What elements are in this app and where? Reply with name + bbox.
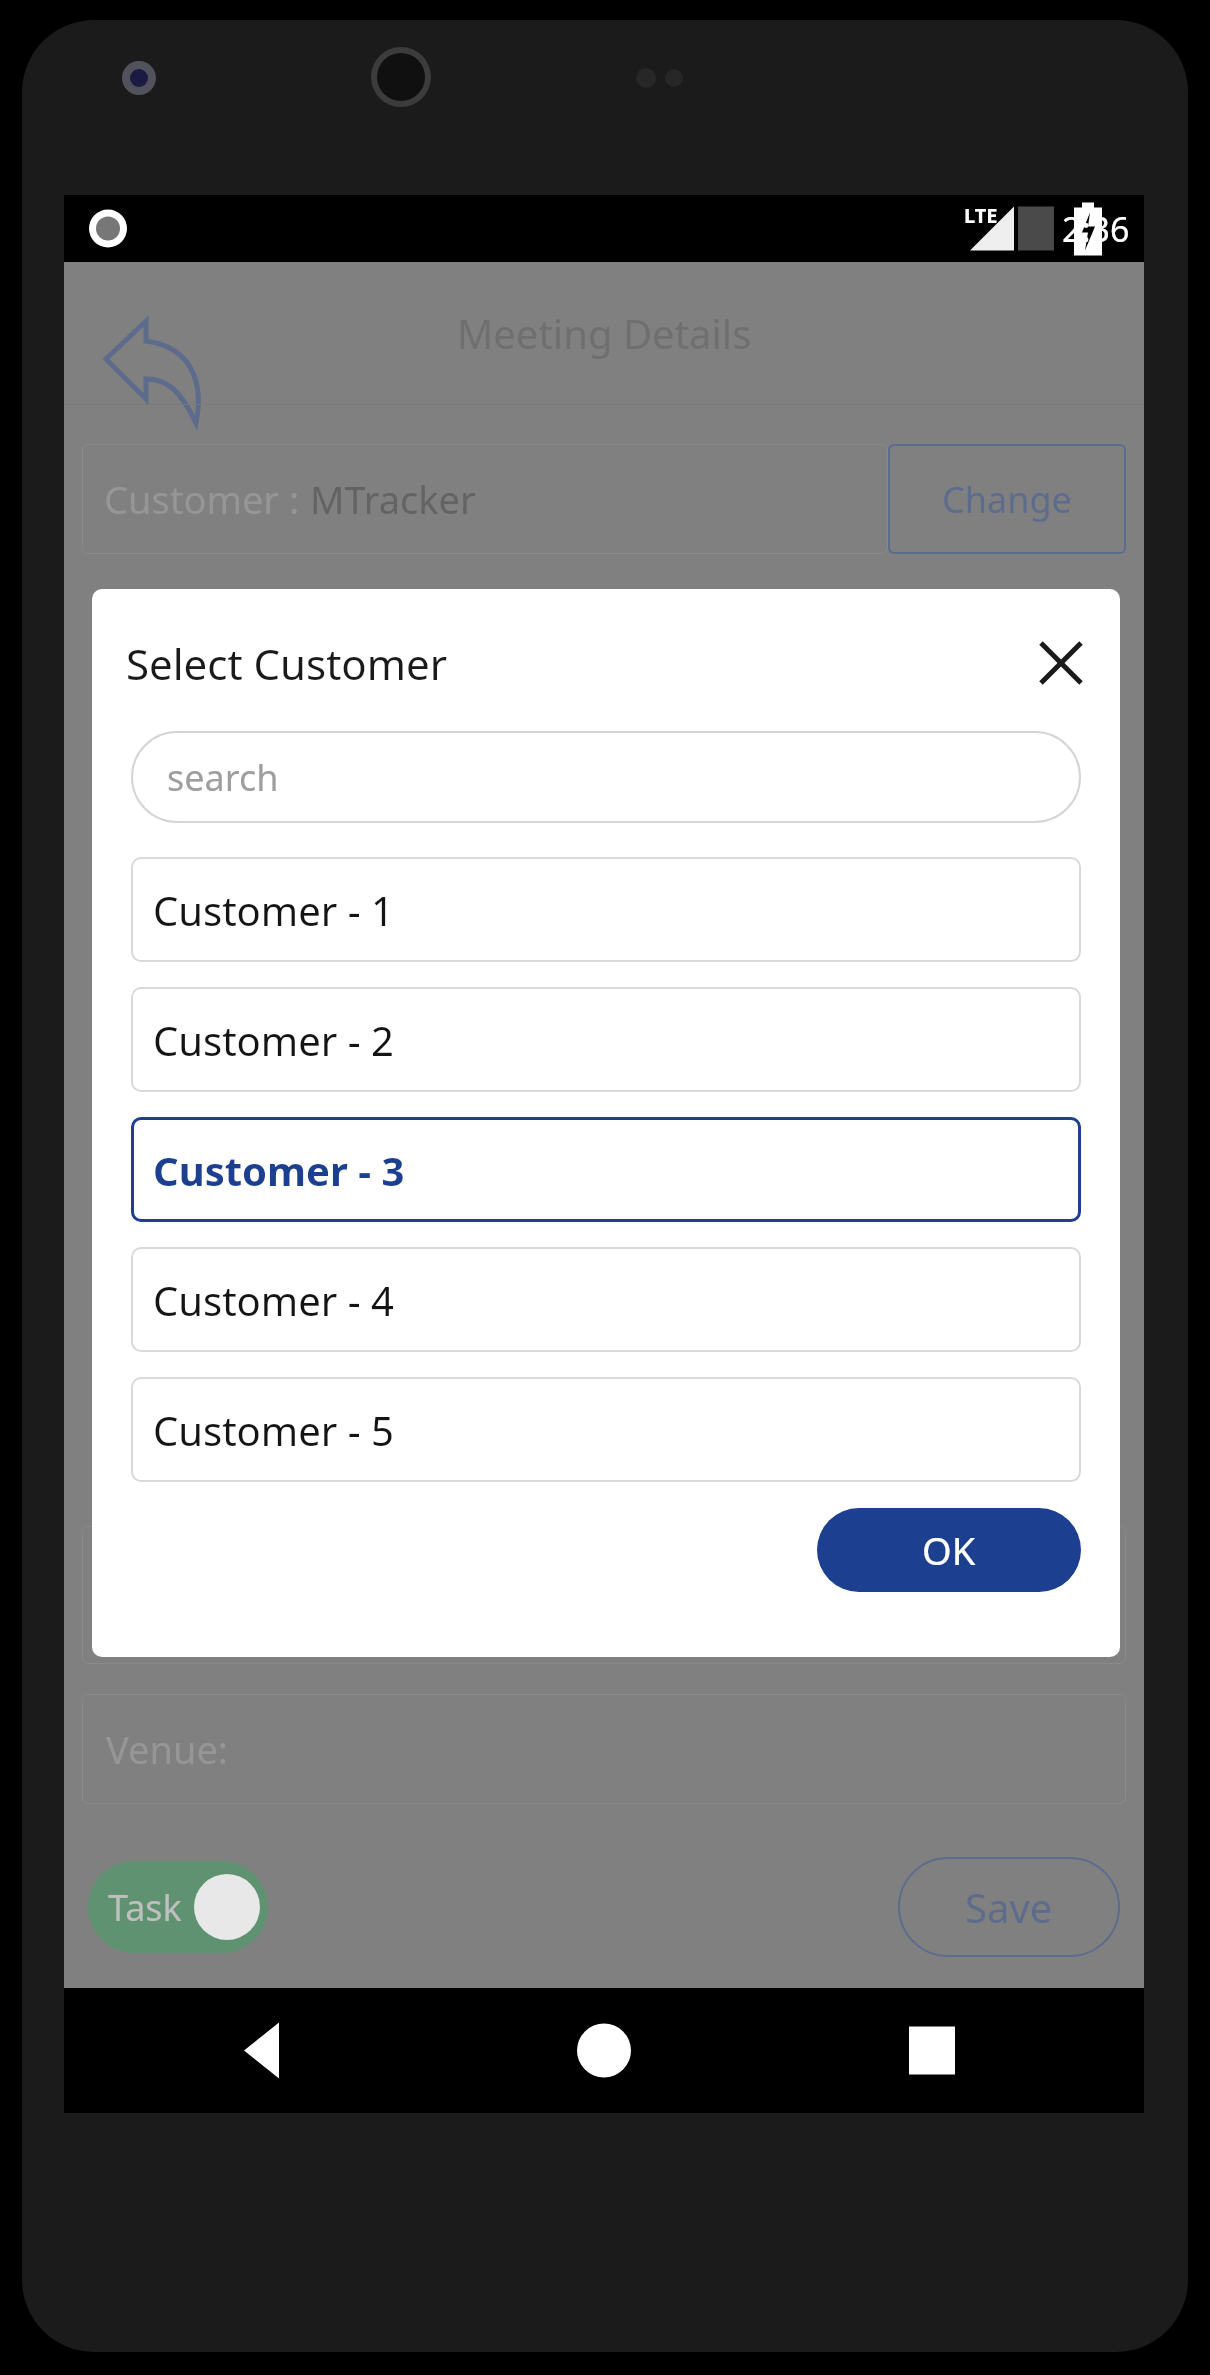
button[interactable]: Customer - 2	[131, 987, 1081, 1092]
staticText: Venue:	[106, 1723, 229, 1775]
staticText: Customer - 1	[153, 883, 394, 937]
staticText: 2:36	[1062, 206, 1130, 252]
staticText: Save	[965, 1880, 1053, 1934]
button[interactable]: search	[131, 731, 1081, 823]
staticText: OK	[922, 1524, 976, 1576]
staticText: Customer - 3	[153, 1143, 405, 1197]
button[interactable]: Customer - 5	[131, 1377, 1081, 1482]
staticText: Meeting Details	[457, 306, 752, 360]
button[interactable]: OK	[817, 1508, 1081, 1592]
button[interactable]: Task	[88, 1861, 268, 1953]
button[interactable]: Customer :	[82, 444, 888, 554]
staticText: Change	[942, 475, 1072, 524]
staticText: search	[167, 753, 279, 802]
button[interactable]: Customer - 1	[131, 857, 1081, 962]
other: Back	[84, 297, 204, 417]
button[interactable]: Customer - 3	[131, 1117, 1081, 1222]
button[interactable]: Customer - 4	[131, 1247, 1081, 1352]
staticText: LTE	[964, 202, 998, 229]
button[interactable]: Close	[1028, 630, 1094, 696]
staticText: Customer :	[104, 473, 310, 525]
staticText: Customer - 5	[153, 1403, 394, 1457]
staticText: Customer - 2	[153, 1013, 394, 1067]
button[interactable]	[82, 1526, 1126, 1664]
staticText: MTracker	[310, 473, 476, 525]
staticText: Customer - 4	[153, 1273, 394, 1327]
button[interactable]: Change	[888, 444, 1126, 554]
button[interactable]: Save	[898, 1857, 1120, 1957]
staticText: Task	[108, 1883, 182, 1932]
staticText: Select Customer	[126, 635, 448, 692]
